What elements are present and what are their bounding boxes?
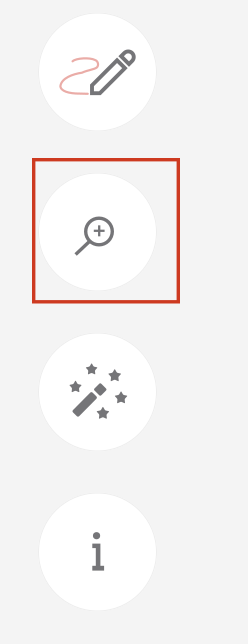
button[interactable]: Zoom In <box>38 172 157 291</box>
button[interactable]: Info <box>38 492 157 611</box>
button[interactable]: Enhance <box>38 332 157 451</box>
button[interactable]: Draw <box>38 12 157 131</box>
